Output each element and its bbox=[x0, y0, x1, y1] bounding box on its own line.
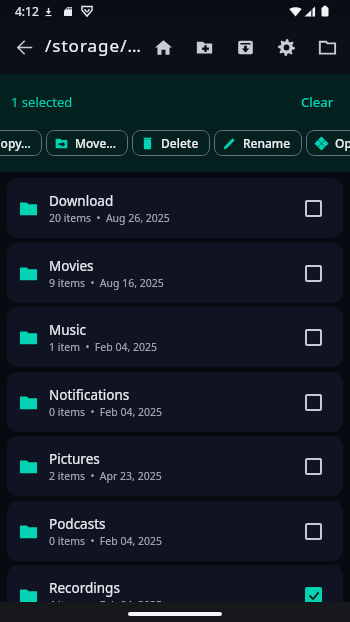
button[interactable]: Open with… bbox=[306, 130, 350, 156]
button[interactable]: Notifications bbox=[7, 372, 343, 432]
button[interactable]: Select bbox=[293, 317, 333, 357]
button[interactable]: Folders bbox=[307, 27, 348, 68]
button[interactable]: Select bbox=[293, 382, 333, 422]
button[interactable]: Pictures bbox=[7, 436, 343, 496]
staticText: /storage/… bbox=[45, 34, 142, 57]
staticText: Pictures bbox=[49, 450, 100, 468]
button[interactable]: Recordings bbox=[7, 565, 343, 602]
button[interactable]: Back bbox=[8, 31, 41, 64]
staticText: Podcasts bbox=[49, 515, 106, 533]
staticText: 2 items • Apr 23, 2025 bbox=[49, 469, 162, 483]
staticText: Delete bbox=[161, 135, 199, 151]
staticText: Music bbox=[49, 321, 87, 339]
button[interactable]: Move… bbox=[46, 130, 128, 156]
button[interactable]: Music bbox=[7, 307, 343, 367]
staticText: Open with… bbox=[335, 135, 350, 151]
staticText: 4:12 bbox=[15, 3, 39, 19]
button[interactable]: Create folder bbox=[184, 27, 225, 68]
staticText: 1 selected bbox=[11, 93, 73, 111]
button[interactable]: Clear bbox=[289, 87, 346, 117]
button[interactable]: Delete bbox=[132, 130, 210, 156]
button[interactable]: Rename bbox=[214, 130, 302, 156]
button[interactable]: Select bbox=[293, 253, 333, 293]
button[interactable]: Download bbox=[7, 178, 343, 238]
button[interactable]: Extract bbox=[225, 27, 266, 68]
button[interactable]: Settings bbox=[266, 27, 307, 68]
staticText: 0 items • Feb 04, 2025 bbox=[49, 534, 163, 548]
button[interactable]: Home bbox=[143, 27, 184, 68]
staticText: Movies bbox=[49, 257, 94, 275]
staticText: Clear bbox=[301, 93, 334, 111]
staticText: 20 items • Aug 26, 2025 bbox=[49, 211, 170, 225]
button[interactable]: Select bbox=[293, 446, 333, 486]
button[interactable]: Movies bbox=[7, 243, 343, 303]
staticText: Download bbox=[49, 192, 114, 210]
staticText: 0 items • Feb 04, 2025 bbox=[49, 405, 163, 419]
staticText: 9 items • Aug 16, 2025 bbox=[49, 276, 164, 290]
button[interactable]: Selected bbox=[293, 575, 333, 602]
button[interactable]: Podcasts bbox=[7, 501, 343, 561]
staticText: 1 item • Feb 04, 2025 bbox=[49, 340, 157, 354]
button[interactable]: Select bbox=[293, 188, 333, 228]
button[interactable]: Select bbox=[293, 511, 333, 551]
staticText: Notifications bbox=[49, 386, 130, 404]
staticText: Rename bbox=[243, 135, 291, 151]
staticText: 4 items • Feb 04, 2025 bbox=[49, 598, 163, 602]
staticText: Copy… bbox=[0, 135, 31, 151]
button[interactable]: Copy… bbox=[0, 130, 42, 156]
staticText: Recordings bbox=[49, 579, 120, 597]
staticText: Move… bbox=[75, 135, 117, 151]
